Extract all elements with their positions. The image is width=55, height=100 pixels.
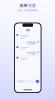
staticText: 沟通 [27, 2, 35, 8]
staticText: 简单 [19, 2, 27, 8]
staticText: 发消息 [18, 80, 24, 83]
staticText: 消息 [26, 28, 30, 32]
staticText: 让每一次对话都更顺畅 [17, 9, 37, 12]
